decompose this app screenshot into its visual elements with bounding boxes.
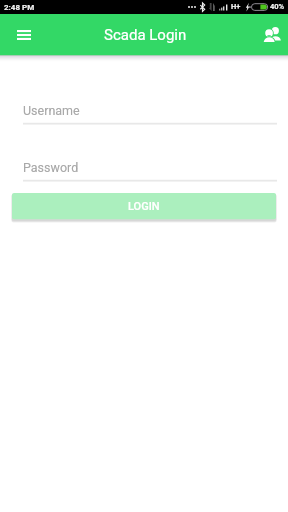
staticText: Password	[23, 160, 79, 175]
button[interactable]: LOGIN	[6, 189, 282, 225]
staticText: H+	[231, 2, 241, 11]
button[interactable]: Menu	[8, 19, 40, 51]
button[interactable]: Users	[256, 19, 288, 51]
staticText: Scada Login	[104, 26, 187, 44]
staticText: 40%	[270, 2, 285, 11]
staticText: LOGIN	[128, 200, 160, 213]
staticText: 2:48 PM	[4, 3, 35, 12]
staticText: Username	[23, 103, 80, 118]
